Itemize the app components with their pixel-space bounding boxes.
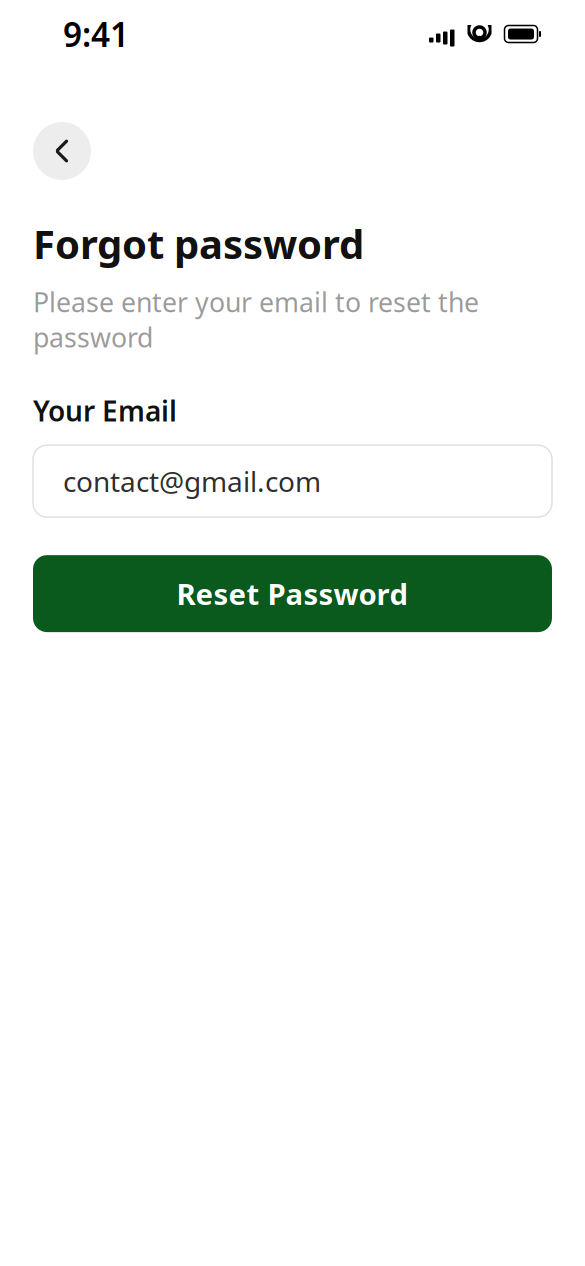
staticText: Your Email: [33, 392, 177, 429]
button[interactable]: Back: [33, 122, 91, 180]
button[interactable]: Reset Password: [33, 555, 552, 632]
staticText: 9:41: [63, 12, 129, 56]
staticText: Forgot password: [33, 217, 364, 270]
button[interactable]: contact@gmail.com: [33, 445, 552, 517]
staticText: Reset Password: [176, 574, 408, 613]
staticText: contact@gmail.com: [63, 462, 321, 500]
staticText: Please enter your email to reset the pas…: [33, 284, 479, 355]
